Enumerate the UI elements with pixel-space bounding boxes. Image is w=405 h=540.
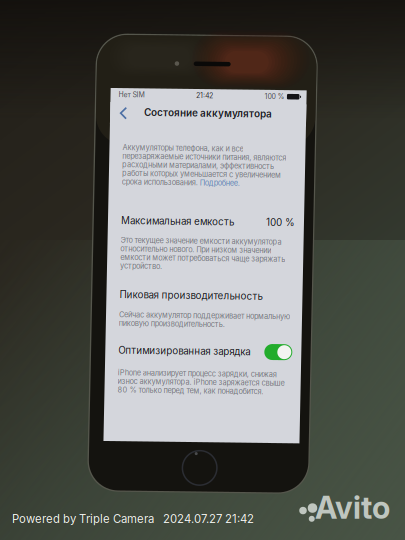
staticText: емкости может потребоваться чаще заряжат… bbox=[28, 219, 193, 228]
staticText: iPhone анализирует процесс зарядки, сниж… bbox=[28, 334, 187, 343]
button[interactable]: Оптимизированная зарядка bbox=[174, 308, 202, 324]
staticText: Подробнее. bbox=[106, 144, 146, 153]
staticText: Powered by Triple Camera bbox=[12, 512, 154, 526]
staticText: относительно нового. При низком значении bbox=[28, 211, 179, 219]
staticText: расходными материалами, эффективность bbox=[28, 126, 180, 135]
staticText: Максимальная емкость bbox=[28, 181, 141, 193]
staticText: Avito bbox=[315, 489, 390, 526]
staticText: Сейчас аккумулятор поддерживает нормальн… bbox=[28, 276, 199, 285]
staticText: Оптимизированная зарядка bbox=[28, 311, 160, 322]
staticText: Это текущее значение емкости аккумулятор… bbox=[28, 202, 189, 211]
staticText: работы которых уменьшается с увеличением bbox=[28, 135, 187, 144]
staticText: Состояние аккумулятора bbox=[49, 72, 177, 84]
staticText: пиковую производительность. bbox=[28, 285, 134, 294]
staticText: Пиковая производительность bbox=[28, 255, 171, 267]
staticText: срока использования. bbox=[28, 144, 106, 153]
staticText: 2024.07.27 21:42 bbox=[163, 512, 254, 526]
staticText: Аккумуляторы телефона, как и все bbox=[28, 109, 149, 118]
staticText: 100 % bbox=[169, 57, 189, 65]
staticText: 100 % bbox=[173, 181, 202, 193]
button[interactable]: Подробнее. bbox=[106, 144, 146, 153]
staticText: износ аккумулятора. iPhone заряжается св… bbox=[28, 343, 195, 352]
staticText: перезаряжаемые источники питания, являют… bbox=[28, 118, 192, 127]
staticText: 80 % только перед тем, как понадобится. bbox=[28, 352, 174, 361]
